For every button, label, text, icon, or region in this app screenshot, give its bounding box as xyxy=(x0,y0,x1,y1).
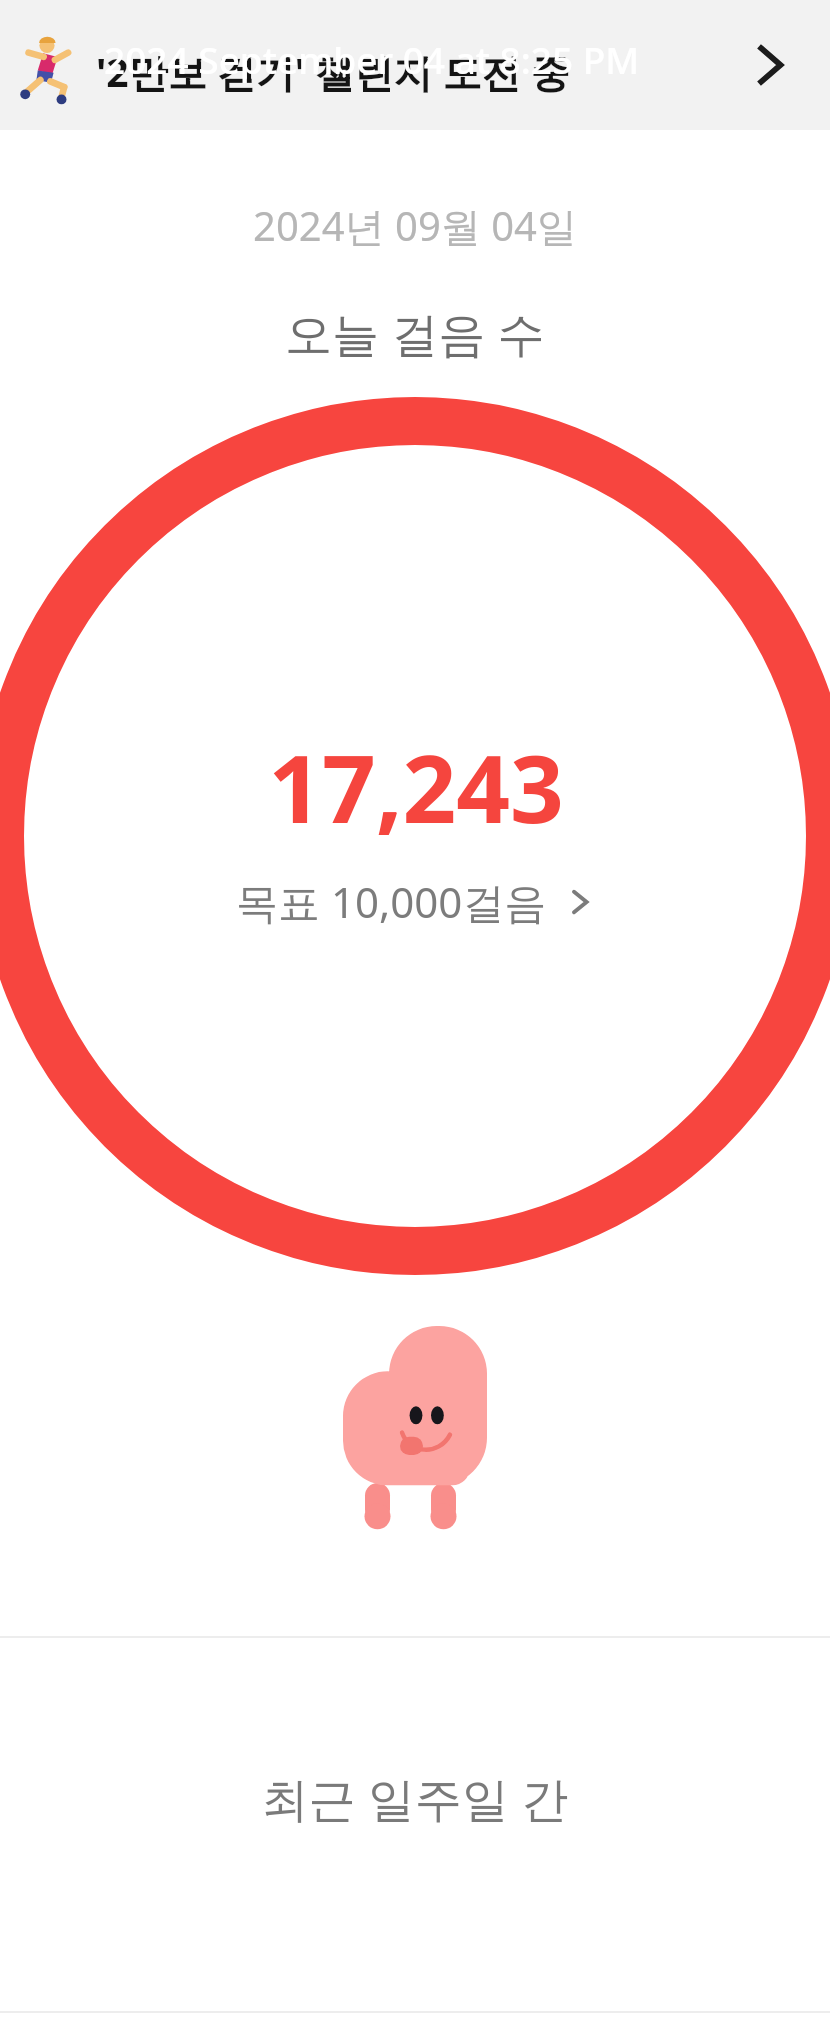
staticText: 최근 일주일 간 xyxy=(0,1766,830,1830)
staticText: 목표 10,000걸음 xyxy=(236,873,547,930)
button[interactable]: 챌린지 상세 보기 xyxy=(734,29,806,101)
staticText: '2만보 걷기' 챌린지 도전 중 xyxy=(96,45,570,98)
staticText: 2024년 09월 04일 xyxy=(0,198,830,253)
staticText: 17,243 xyxy=(268,723,564,851)
staticText: 2024 September 04 at 8:25 PM xyxy=(104,34,640,84)
button[interactable]: 목표 10,000걸음 xyxy=(228,869,603,934)
staticText: 오늘 걸음 수 xyxy=(0,301,830,365)
button[interactable]: '2만보 걷기' 챌린지 도전 중 xyxy=(0,0,830,130)
